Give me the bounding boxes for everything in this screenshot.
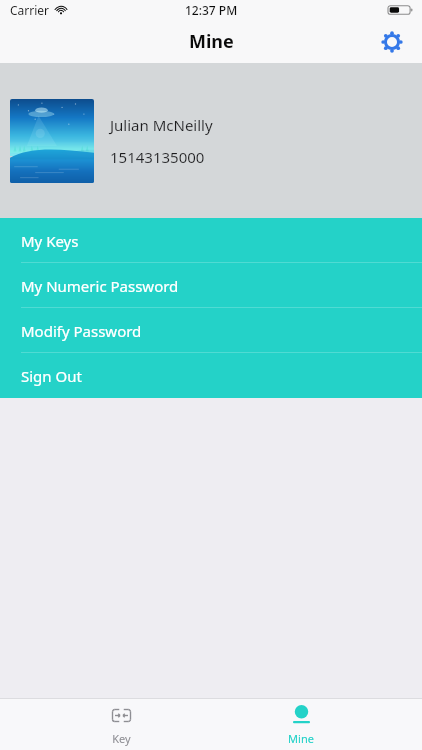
- staticText: 12:37 PM: [185, 2, 238, 18]
- staticText: Modify Password: [21, 321, 142, 341]
- button[interactable]: Julian McNeilly: [0, 63, 422, 218]
- button[interactable]: Sign Out: [0, 353, 422, 398]
- staticText: Julian McNeilly: [110, 115, 213, 135]
- button[interactable]: My Keys: [0, 218, 422, 263]
- button[interactable]: My Numeric Password: [0, 263, 422, 308]
- staticText: My Numeric Password: [21, 276, 179, 296]
- staticText: Carrier: [10, 2, 50, 18]
- button[interactable]: Mine: [241, 699, 361, 750]
- button[interactable]: Key: [61, 699, 181, 750]
- staticText: 15143135000: [110, 147, 205, 167]
- staticText: Mine: [189, 29, 234, 54]
- staticText: My Keys: [21, 231, 79, 251]
- button[interactable]: Settings: [374, 24, 410, 60]
- staticText: Sign Out: [21, 366, 82, 386]
- button[interactable]: Modify Password: [0, 308, 422, 353]
- staticText: Key: [112, 731, 131, 746]
- staticText: Mine: [288, 731, 314, 746]
